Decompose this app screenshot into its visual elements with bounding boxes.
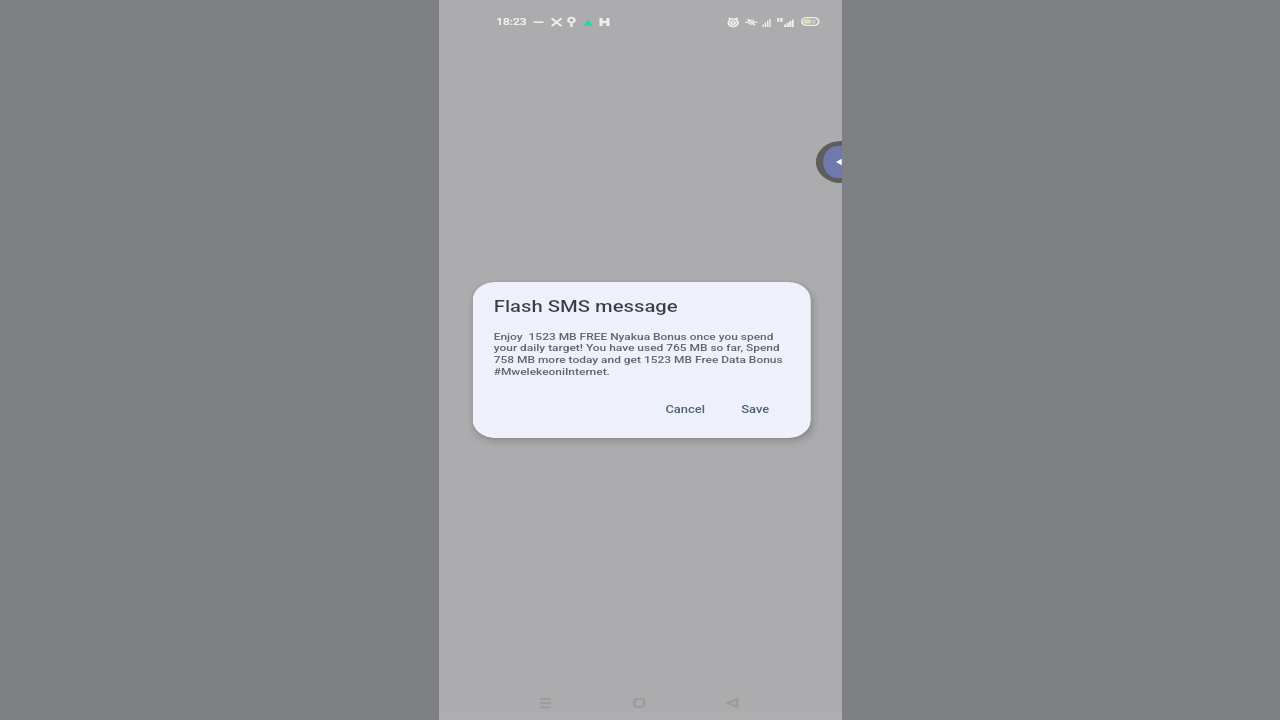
staticText: Flash SMS message xyxy=(494,297,678,316)
button[interactable]: Back gesture handle xyxy=(816,141,842,183)
staticText: 18:23 xyxy=(496,16,527,27)
button[interactable]: Home xyxy=(616,691,662,715)
staticText: Enjoy 1523 MB FREE Nyakua Bonus once you… xyxy=(494,331,787,378)
button[interactable]: Back xyxy=(709,691,755,715)
staticText: Save xyxy=(741,403,770,415)
button[interactable]: Cancel xyxy=(653,392,718,426)
staticText: Cancel xyxy=(665,403,705,415)
button[interactable]: Save xyxy=(729,392,782,426)
button[interactable]: Recent apps xyxy=(522,691,568,715)
